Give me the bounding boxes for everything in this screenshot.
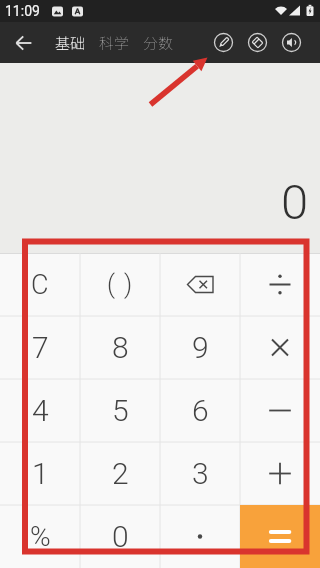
staticText: 1 — [32, 456, 49, 491]
button[interactable]: 7 — [0, 316, 80, 379]
button[interactable]: 6 — [160, 379, 240, 442]
button[interactable]: % — [0, 505, 80, 568]
button[interactable]: 4 — [0, 379, 80, 442]
button[interactable]: 3 — [160, 442, 240, 505]
staticText: 9 — [192, 330, 209, 365]
staticText: 7 — [32, 330, 49, 365]
staticText: 8 — [112, 330, 129, 365]
staticText: 4 — [32, 393, 49, 428]
staticText: 3 — [192, 456, 209, 491]
staticText: 5 — [112, 393, 129, 428]
button[interactable]: 科学 — [99, 32, 130, 54]
button[interactable] — [240, 253, 320, 316]
button[interactable] — [240, 505, 320, 568]
staticText: 0 — [112, 519, 129, 554]
button[interactable] — [240, 442, 320, 505]
button[interactable]: 8 — [80, 316, 160, 379]
staticText: % — [30, 520, 51, 553]
button[interactable]: 1 — [0, 442, 80, 505]
staticText: 0 — [281, 174, 309, 231]
button[interactable]: 0 — [80, 505, 160, 568]
button[interactable] — [0, 22, 47, 63]
staticText: C — [31, 269, 49, 301]
button[interactable] — [274, 22, 308, 63]
button[interactable]: ( ) — [80, 253, 160, 316]
button[interactable]: 2 — [80, 442, 160, 505]
button[interactable]: 基础 — [55, 32, 86, 54]
button[interactable]: C — [0, 253, 80, 316]
button[interactable] — [240, 379, 320, 442]
button[interactable] — [160, 253, 240, 316]
staticText: 2 — [112, 456, 129, 491]
button[interactable] — [206, 22, 240, 63]
button[interactable] — [240, 22, 274, 63]
button[interactable]: 9 — [160, 316, 240, 379]
button[interactable] — [240, 316, 320, 379]
staticText: 11:09 — [5, 3, 40, 19]
staticText: ( ) — [107, 270, 134, 299]
staticText: 6 — [192, 393, 209, 428]
button[interactable] — [160, 505, 240, 568]
button[interactable]: 分数 — [143, 32, 174, 54]
button[interactable]: 5 — [80, 379, 160, 442]
